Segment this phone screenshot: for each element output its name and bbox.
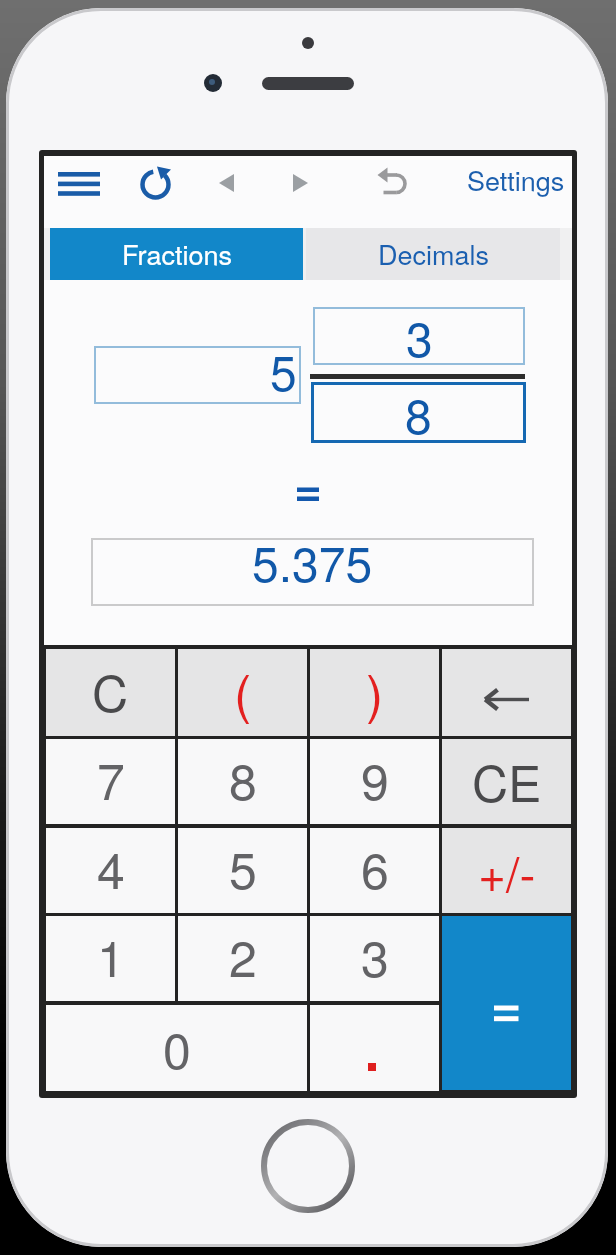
staticText: 1: [97, 920, 125, 992]
button[interactable]: [136, 164, 176, 204]
button[interactable]: [286, 167, 316, 199]
staticText: 3: [361, 920, 389, 992]
button[interactable]: [442, 916, 571, 1090]
staticText: +/-: [478, 837, 536, 906]
staticText: 4: [97, 832, 125, 904]
staticText: 5: [229, 832, 257, 904]
staticText: Settings: [467, 160, 565, 199]
button[interactable]: [212, 167, 242, 199]
button[interactable]: [442, 649, 571, 736]
button[interactable]: Decimals: [306, 228, 560, 280]
button[interactable]: (: [178, 649, 307, 736]
button[interactable]: [54, 165, 104, 201]
staticText: 0: [163, 1012, 191, 1084]
staticText: C: [92, 655, 129, 727]
staticText: Decimals: [378, 234, 489, 273]
button[interactable]: Fractions: [50, 228, 303, 280]
staticText: 3: [406, 302, 433, 360]
staticText: (: [234, 653, 252, 727]
staticText: 8: [229, 743, 257, 815]
button[interactable]: 2: [178, 916, 307, 1001]
staticText: 9: [361, 743, 389, 815]
staticText: 5.375: [252, 527, 373, 595]
button[interactable]: 6: [310, 828, 439, 913]
button[interactable]: 4: [46, 828, 175, 913]
staticText: 7: [97, 743, 125, 815]
staticText: 8: [405, 379, 432, 440]
button[interactable]: CE: [442, 739, 571, 824]
staticText: 6: [361, 832, 389, 904]
button[interactable]: 9: [310, 739, 439, 824]
staticText: Fractions: [122, 234, 232, 273]
button[interactable]: 5: [178, 828, 307, 913]
button[interactable]: [374, 163, 410, 201]
staticText: ): [366, 653, 384, 727]
button[interactable]: [310, 1005, 439, 1091]
staticText: CE: [472, 745, 542, 817]
button[interactable]: +/-: [442, 828, 571, 913]
button[interactable]: 7: [46, 739, 175, 824]
staticText: 2: [229, 920, 257, 992]
button[interactable]: 1: [46, 916, 175, 1001]
button[interactable]: Settings: [461, 164, 565, 204]
button[interactable]: C: [46, 649, 175, 736]
staticText: 5: [270, 336, 297, 394]
button[interactable]: ): [310, 649, 439, 736]
button[interactable]: 0: [46, 1005, 307, 1091]
button[interactable]: 8: [178, 739, 307, 824]
button[interactable]: 3: [310, 916, 439, 1001]
